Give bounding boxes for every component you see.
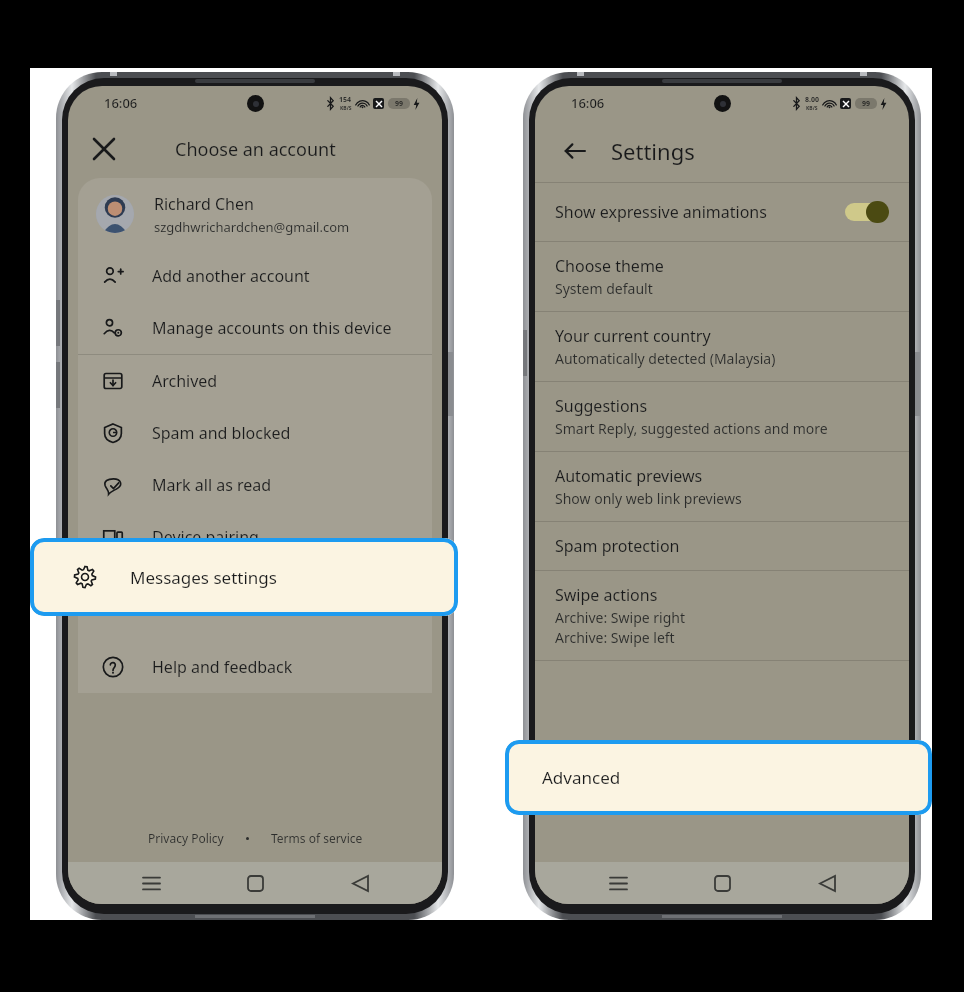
button[interactable]: Archived [78,355,432,407]
staticText: Device pairing [152,526,259,548]
button[interactable]: Spam protection [535,522,909,570]
staticText: 8.00 [805,95,819,105]
staticText: Terms of service [271,830,363,846]
button[interactable]: Device pairing [78,511,432,563]
staticText: szgdhwrichardchen@gmail.com [154,218,350,236]
button[interactable]: Home [700,862,744,904]
staticText: Add another account [152,265,310,287]
staticText: 99 [395,99,404,109]
button[interactable]: Choose theme [535,242,909,311]
staticText: 154 [339,95,352,105]
button[interactable]: Show expressive animations [535,183,909,241]
staticText: System default [555,279,653,298]
staticText: Messages settings [130,566,277,589]
staticText: Your current country [555,325,711,347]
button[interactable]: Automatic previews [535,452,909,521]
button[interactable]: About, terms and privacy [535,735,909,783]
staticText: Archive: Swipe left [555,628,675,647]
staticText: Show expressive animations [555,201,845,223]
button[interactable]: Add another account [78,250,432,302]
staticText: Mark all as read [152,474,272,496]
staticText: Privacy Policy [148,830,224,846]
staticText: 16:06 [571,94,605,112]
staticText: Choose theme [555,255,664,277]
staticText: 16:06 [104,94,138,112]
button[interactable]: Suggestions [535,382,909,451]
staticText: Choose an account [175,137,336,162]
button[interactable]: Help and feedback [78,641,432,693]
button[interactable]: Advanced [505,740,932,815]
staticText: 99 [862,99,871,109]
staticText: Richard Chen [154,193,254,215]
button[interactable]: Your current country [535,312,909,381]
button[interactable]: Swipe actions [535,571,909,660]
staticText: Automatic previews [555,465,703,487]
button[interactable]: Mark all as read [78,459,432,511]
staticText: KB/S [340,105,352,112]
button[interactable]: Home [233,862,277,904]
staticText: Spam and blocked [152,422,291,444]
staticText: Spam protection [555,535,680,557]
staticText: Smart Reply, suggested actions and more [555,419,828,438]
button[interactable]: Back [338,862,382,904]
staticText: Suggestions [555,395,648,417]
staticText: Swipe actions [555,584,658,606]
button[interactable]: Recent apps [129,862,173,904]
staticText: Help and feedback [152,656,293,678]
button[interactable]: Privacy Policy [144,826,228,850]
button[interactable]: Richard Chen [78,178,432,250]
staticText: Archive: Swipe right [555,608,685,627]
button[interactable]: Spam and blocked [78,407,432,459]
staticText: Advanced [542,766,621,789]
staticText: Show only web link previews [555,489,742,508]
button[interactable]: Back [555,131,595,171]
button[interactable]: Terms of service [267,826,367,850]
staticText: Automatically detected (Malaysia) [555,349,776,368]
staticText: Archived [152,370,218,392]
button[interactable]: Back [805,862,849,904]
button[interactable]: Manage accounts on this device [78,302,432,354]
button[interactable]: Close [84,129,124,169]
button[interactable]: Recent apps [596,862,640,904]
staticText: Settings [611,136,695,166]
button[interactable]: Messages settings [30,538,458,616]
staticText: KB/S [806,105,818,112]
staticText: Manage accounts on this device [152,317,392,339]
